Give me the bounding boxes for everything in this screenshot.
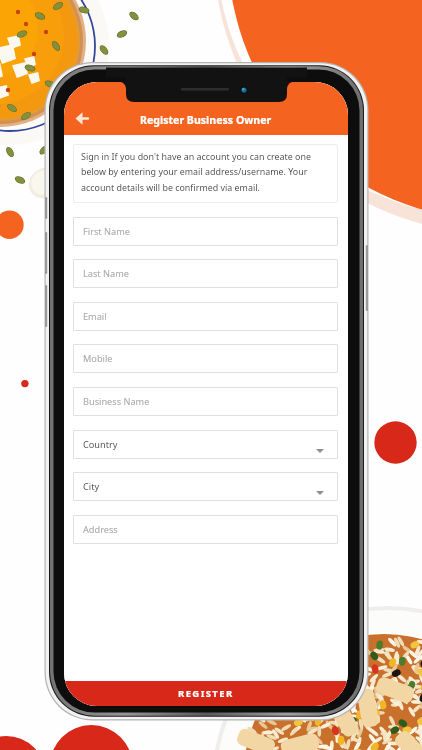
staticText: REGISTER <box>178 687 234 700</box>
button[interactable]: REGISTER <box>64 681 348 706</box>
staticText: Register Business Owner <box>140 113 272 127</box>
staticText: City <box>83 480 100 493</box>
staticText: First Name <box>83 225 130 238</box>
button[interactable]: Address <box>73 515 338 544</box>
button[interactable]: City <box>73 472 338 501</box>
staticText: Email <box>83 310 107 323</box>
staticText: Mobile <box>83 352 113 365</box>
button[interactable]: Last Name <box>73 259 338 288</box>
staticText: Country <box>83 438 118 451</box>
button[interactable]: Back <box>67 104 95 132</box>
button[interactable]: Email <box>73 302 338 331</box>
staticText: Last Name <box>83 267 129 280</box>
button[interactable]: Mobile <box>73 344 338 373</box>
staticText: Business Name <box>83 395 150 408</box>
staticText: Address <box>83 523 118 536</box>
button[interactable]: Country <box>73 430 338 459</box>
button[interactable]: Business Name <box>73 387 338 416</box>
button[interactable]: First Name <box>73 217 338 246</box>
staticText: Sign in If you don't have an account you… <box>81 150 334 194</box>
